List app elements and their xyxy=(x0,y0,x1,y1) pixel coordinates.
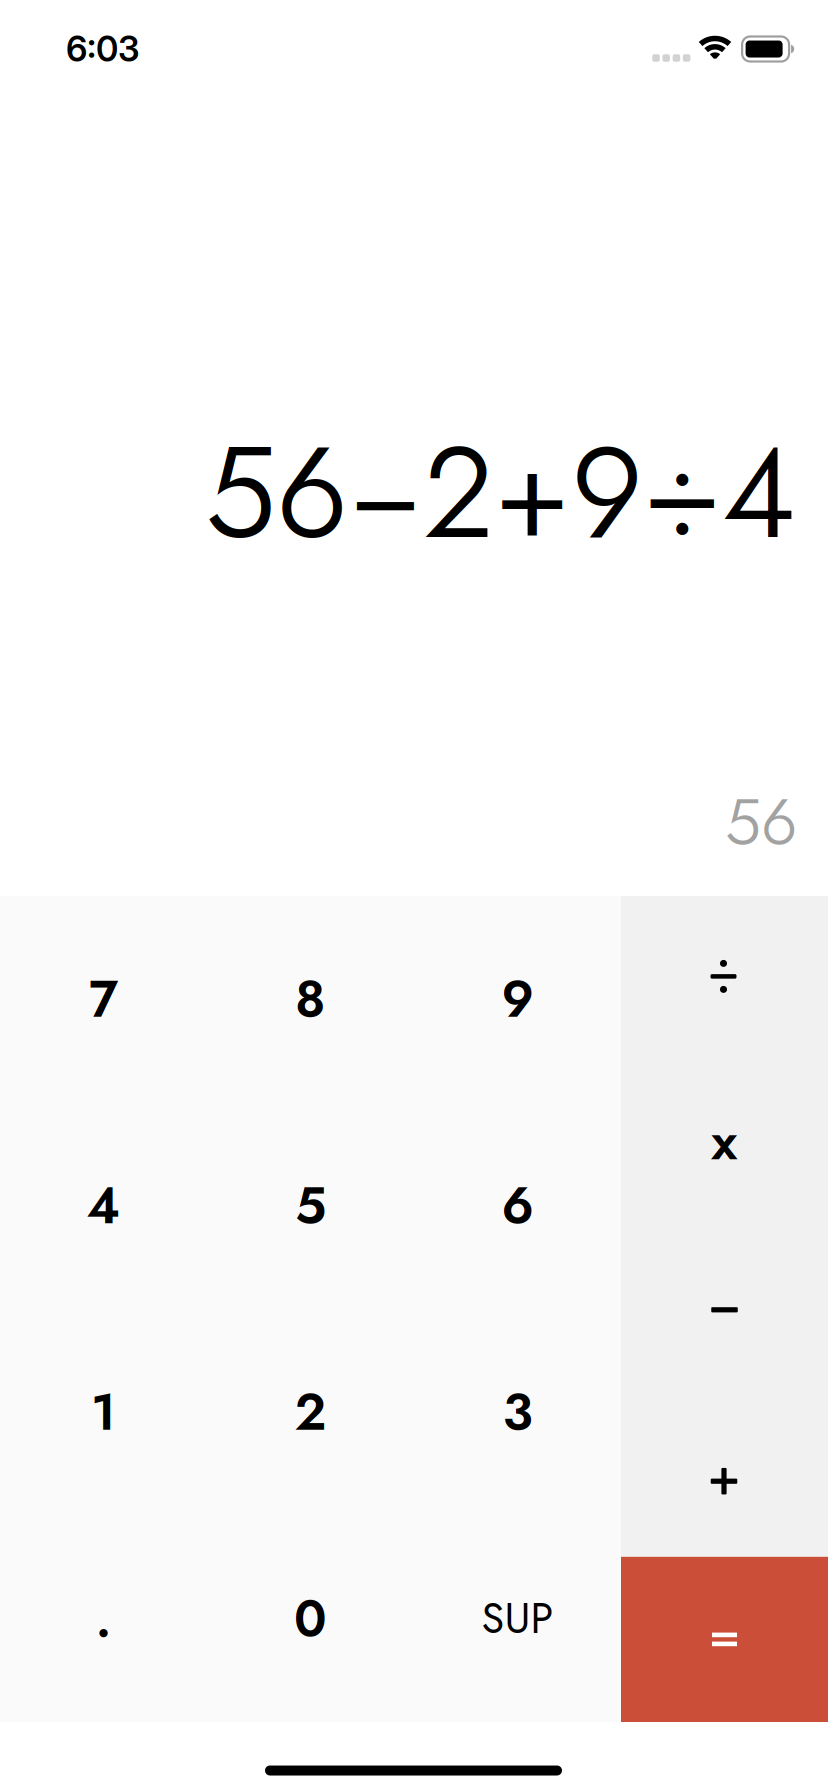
button[interactable]: 8 xyxy=(207,896,414,1102)
staticText: 6:03 xyxy=(66,28,140,70)
staticText: 56−2+9÷4 xyxy=(205,401,795,584)
staticText: 56 xyxy=(725,776,797,868)
staticText: . xyxy=(95,1582,111,1655)
button[interactable] xyxy=(621,1392,828,1557)
button[interactable]: . xyxy=(0,1515,207,1722)
staticText: x xyxy=(711,1102,738,1179)
staticText: SUP xyxy=(481,1589,553,1649)
button[interactable] xyxy=(621,896,828,1061)
button[interactable]: SUP xyxy=(414,1515,621,1722)
staticText: 1 xyxy=(91,1376,116,1449)
staticText: 3 xyxy=(502,1376,532,1449)
staticText: 6 xyxy=(501,1169,533,1242)
staticText: 2 xyxy=(294,1376,326,1449)
button[interactable]: 5 xyxy=(207,1102,414,1309)
button[interactable]: 9 xyxy=(414,896,621,1102)
button[interactable]: x xyxy=(621,1061,828,1226)
staticText: 9 xyxy=(501,963,533,1036)
button[interactable]: 2 xyxy=(207,1309,414,1515)
staticText: 8 xyxy=(295,963,326,1036)
staticText: 5 xyxy=(295,1169,326,1242)
button[interactable]: 4 xyxy=(0,1102,207,1309)
button[interactable]: 3 xyxy=(414,1309,621,1515)
staticText: 4 xyxy=(86,1169,120,1242)
button[interactable]: 1 xyxy=(0,1309,207,1515)
button[interactable]: 0 xyxy=(207,1515,414,1722)
button[interactable] xyxy=(621,1557,828,1722)
staticText: 7 xyxy=(89,963,118,1036)
button[interactable] xyxy=(621,1226,828,1392)
staticText: 0 xyxy=(294,1582,327,1655)
button[interactable]: 7 xyxy=(0,896,207,1102)
button[interactable]: 6 xyxy=(414,1102,621,1309)
